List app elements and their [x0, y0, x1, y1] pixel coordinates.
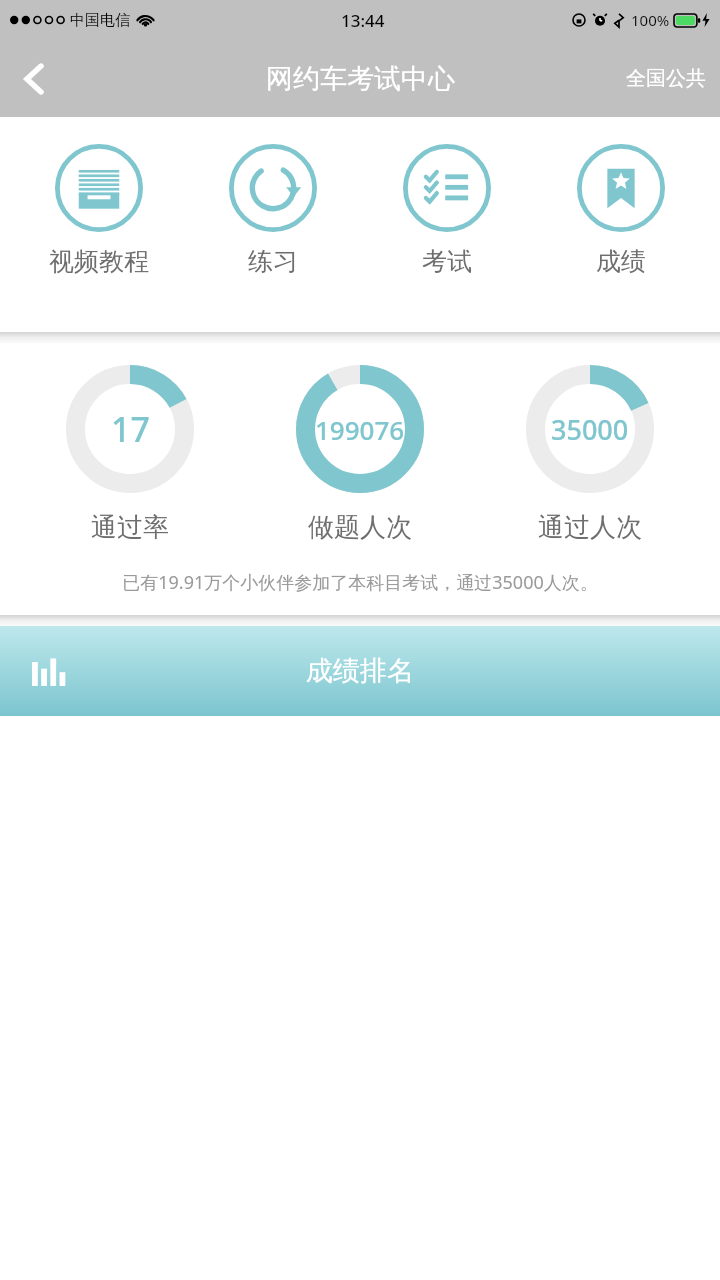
- staticText: 练习: [248, 246, 298, 277]
- staticText: 通过人次: [538, 511, 642, 544]
- staticText: 13:44: [341, 9, 385, 32]
- button[interactable]: Back: [6, 51, 62, 107]
- staticText: 100%: [631, 10, 670, 30]
- staticText: 通过率: [91, 511, 169, 544]
- button[interactable]: 练习: [198, 144, 348, 277]
- staticText: 视频教程: [49, 246, 149, 277]
- staticText: 17: [111, 406, 150, 452]
- button[interactable]: 成绩: [546, 144, 696, 277]
- button[interactable]: 视频教程: [24, 144, 174, 277]
- staticText: 已有19.91万个小伙伴参加了本科目考试，通过35000人次。: [0, 570, 720, 595]
- staticText: 199076: [315, 412, 405, 447]
- staticText: 全国公共: [626, 66, 706, 91]
- button[interactable]: 35000: [490, 365, 690, 544]
- button[interactable]: 考试: [372, 144, 522, 277]
- button[interactable]: 199076: [260, 365, 460, 544]
- staticText: 中国电信: [70, 11, 130, 30]
- button[interactable]: 成绩排名: [0, 626, 720, 716]
- staticText: 做题人次: [308, 511, 412, 544]
- staticText: 考试: [422, 246, 472, 277]
- staticText: 网约车考试中心: [266, 62, 455, 96]
- button[interactable]: 全国公共: [626, 66, 706, 91]
- button[interactable]: 17: [30, 365, 230, 544]
- staticText: 成绩排名: [306, 654, 414, 688]
- staticText: 35000: [551, 411, 629, 448]
- staticText: 成绩: [596, 246, 646, 277]
